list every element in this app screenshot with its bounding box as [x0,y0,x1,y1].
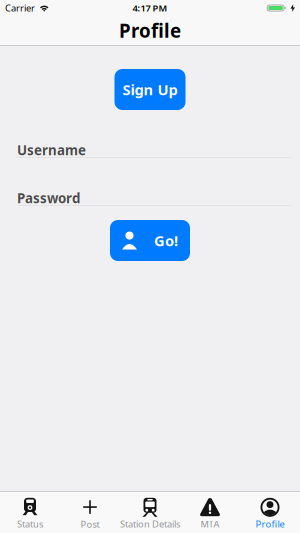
button[interactable]: MTA [180,495,240,530]
button[interactable]: Go! [110,220,190,261]
staticText: Profile [119,18,181,43]
staticText: Post [80,518,99,530]
staticText: Profile [255,518,284,530]
button[interactable]: Station Details [120,495,180,530]
button[interactable]: Sign Up [114,69,185,110]
staticText: 4:17 PM [132,2,167,14]
staticText: Sign Up [122,80,177,99]
button[interactable]: Profile [240,495,300,530]
staticText: Go! [154,231,178,250]
staticText: MTA [200,518,219,530]
button[interactable]: Status [0,495,60,530]
staticText: Username [17,141,86,159]
staticText: Password [17,189,80,207]
button[interactable]: Username text field [0,143,300,158]
staticText: Status [17,518,43,530]
button[interactable]: Password text field [0,191,300,206]
staticText: Station Details [120,518,180,530]
staticText: Carrier [5,2,35,14]
button[interactable]: Post [60,495,120,530]
